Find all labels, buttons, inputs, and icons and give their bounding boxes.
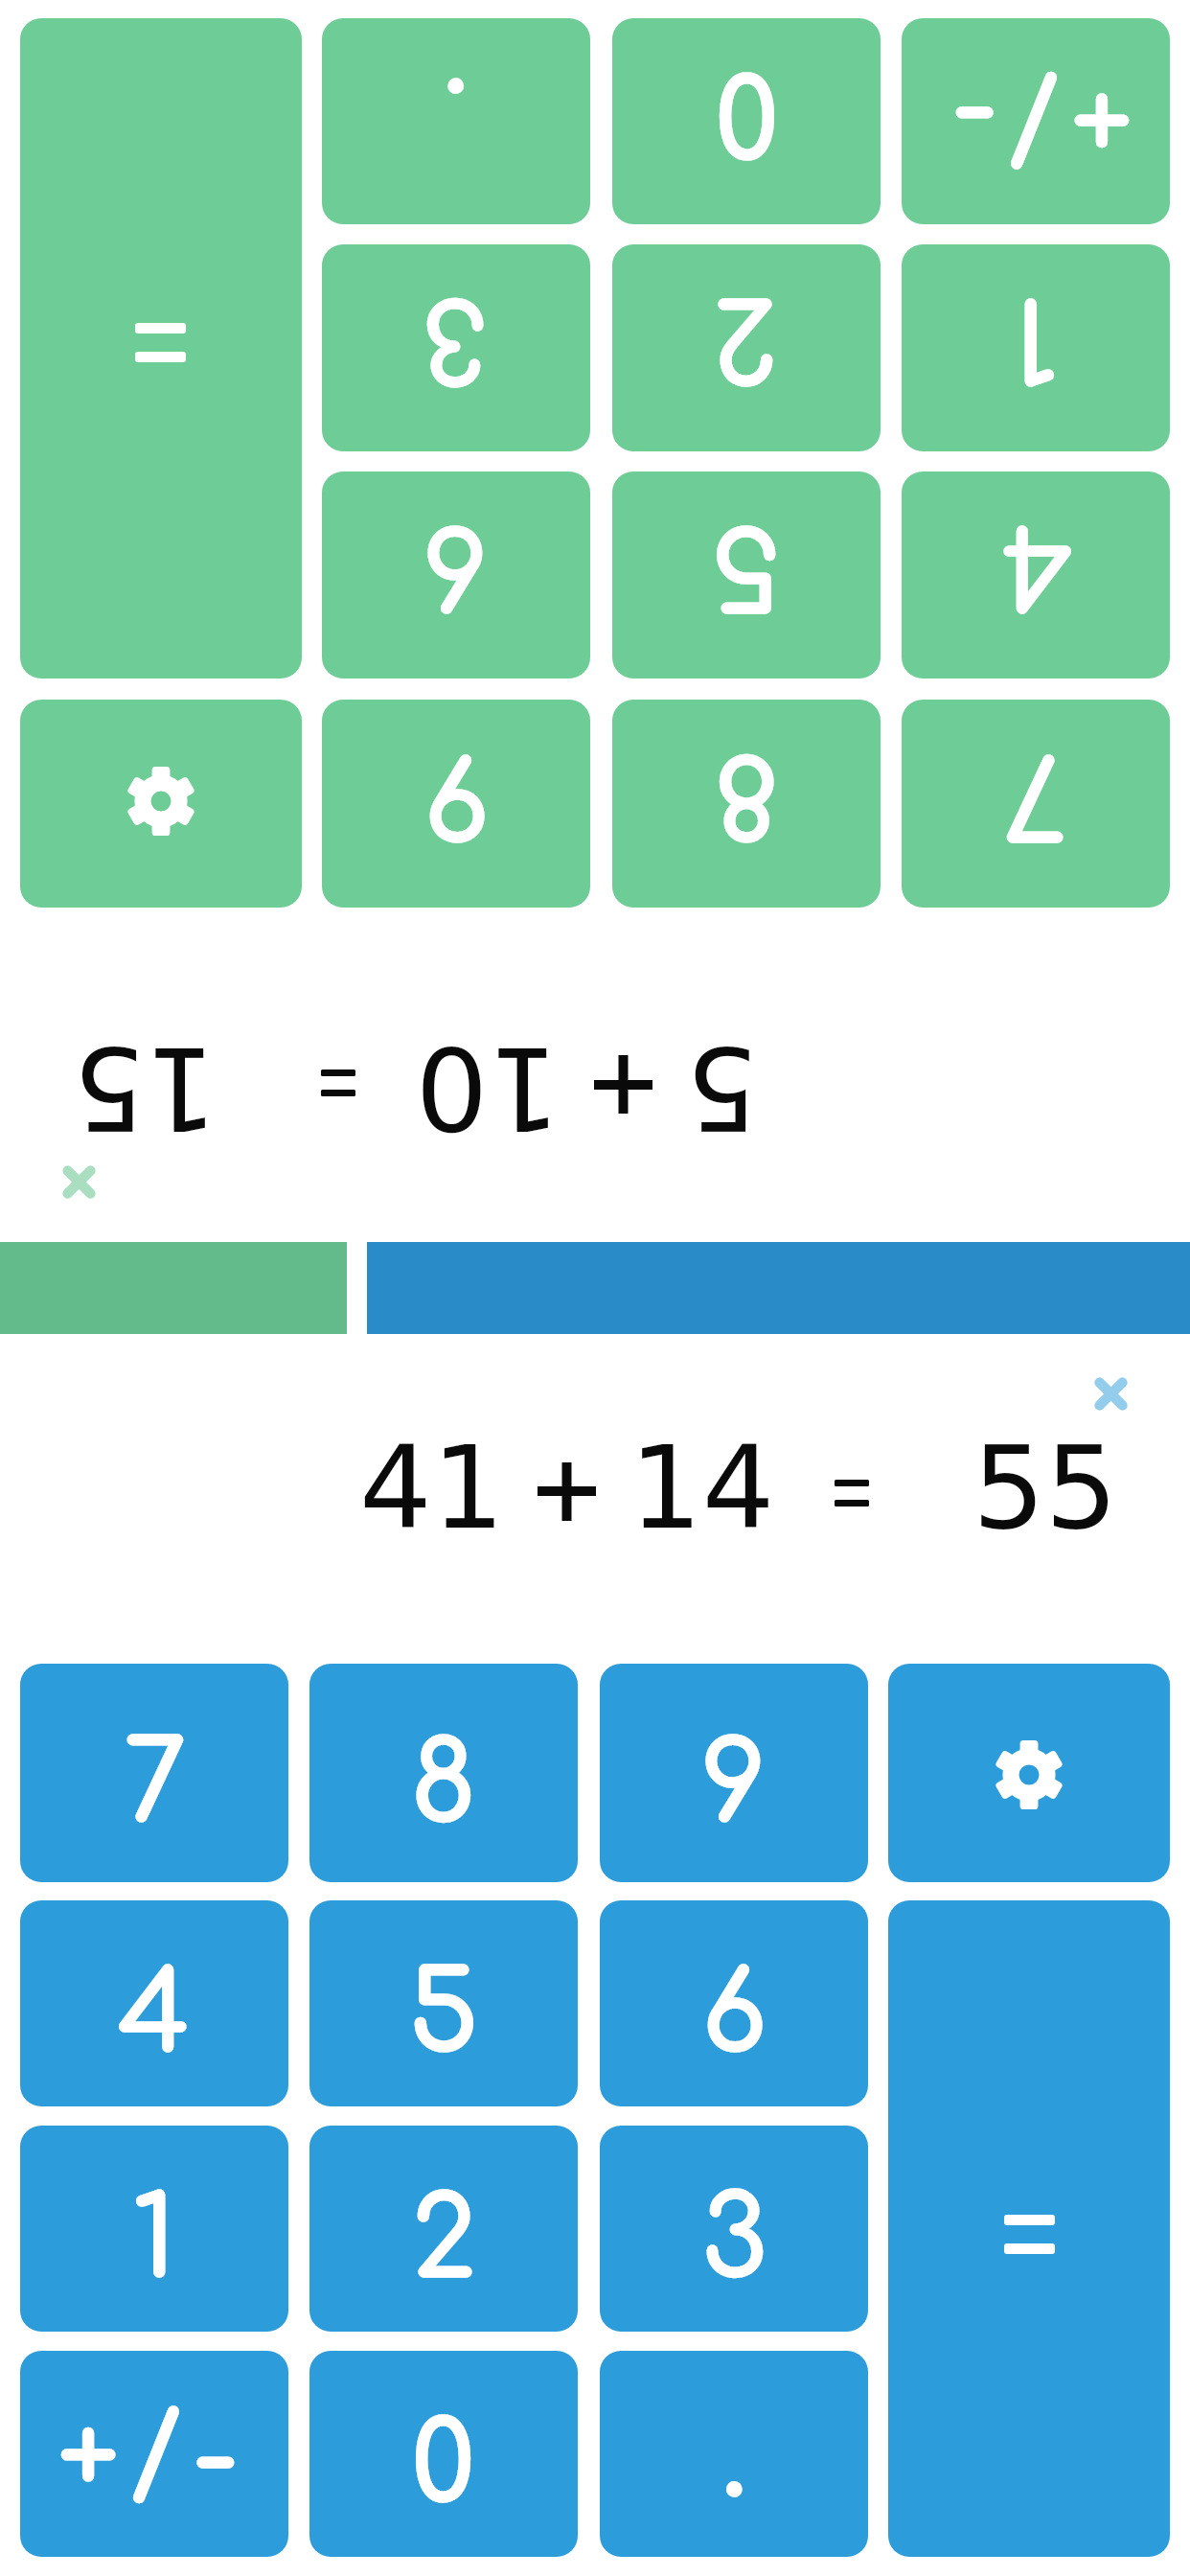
staticText: . <box>444 56 468 177</box>
staticText: 15 <box>72 1021 217 1154</box>
staticText: 1 <box>1015 274 1057 396</box>
staticText: 3 <box>423 274 488 396</box>
staticText: 6 <box>423 501 488 623</box>
staticText: . <box>444 56 468 177</box>
button[interactable]: . <box>600 2351 868 2557</box>
staticText: 4 <box>1000 501 1071 623</box>
staticText: +/- <box>58 2397 250 2518</box>
staticText: 5 <box>685 1021 758 1154</box>
button[interactable]: 7 <box>902 700 1170 908</box>
staticText: +/- <box>940 57 1132 178</box>
staticText: 1 <box>133 2180 175 2302</box>
staticText: 2 <box>412 2180 476 2302</box>
staticText: 7 <box>124 1725 186 1847</box>
button[interactable]: 5 <box>612 471 881 678</box>
staticText: 5 <box>409 1955 478 2077</box>
staticText: 9 <box>702 1725 767 1847</box>
staticText: 3 <box>423 274 488 396</box>
button[interactable]: 5 <box>309 1900 578 2106</box>
staticText: 9 <box>423 730 488 852</box>
staticText: 4 <box>119 1955 190 2077</box>
button[interactable]: Settings <box>20 700 302 908</box>
staticText: 5 <box>409 1955 478 2077</box>
staticText: 6 <box>702 1955 767 2077</box>
button[interactable]: Equals <box>20 18 302 678</box>
staticText: 4 <box>1000 501 1071 623</box>
staticText: 3 <box>702 2180 767 2302</box>
button[interactable]: Settings <box>888 1664 1170 1882</box>
staticText: . <box>722 2398 746 2519</box>
staticText: 7 <box>124 1725 186 1847</box>
staticText: 0 <box>715 48 778 170</box>
button[interactable]: 0 <box>612 18 881 224</box>
button[interactable]: 9 <box>600 1664 868 1882</box>
staticText: 14 <box>629 1422 775 1555</box>
staticText: 0 <box>412 2405 475 2527</box>
staticText: 8 <box>714 730 779 852</box>
staticText: +/- <box>58 2397 250 2518</box>
staticText: . <box>722 2398 746 2519</box>
button[interactable]: +/- <box>20 2351 288 2557</box>
button[interactable]: 0 <box>309 2351 578 2557</box>
button[interactable]: 9 <box>322 700 590 908</box>
staticText: 0 <box>715 48 778 170</box>
button[interactable]: 3 <box>322 244 590 451</box>
staticText: 4 <box>119 1955 190 2077</box>
staticText: 7 <box>1004 730 1066 852</box>
button[interactable]: 2 <box>612 244 881 451</box>
staticText: 5 <box>712 501 781 623</box>
staticText: 6 <box>423 501 488 623</box>
button[interactable]: 6 <box>600 1900 868 2106</box>
staticText: 2 <box>412 2180 476 2302</box>
button[interactable]: Clear entry <box>43 1146 115 1218</box>
button[interactable]: 8 <box>309 1664 578 1882</box>
staticText: 2 <box>714 274 778 396</box>
staticText: 8 <box>411 1725 476 1847</box>
button[interactable]: 8 <box>612 700 881 908</box>
button[interactable]: 2 <box>309 2126 578 2332</box>
button[interactable]: 7 <box>20 1664 288 1882</box>
button[interactable]: +/- <box>902 18 1170 224</box>
button[interactable]: 3 <box>600 2126 868 2332</box>
staticText: 0 <box>412 2405 475 2527</box>
staticText: 8 <box>714 730 779 852</box>
staticText: 55 <box>973 1422 1118 1555</box>
button[interactable]: 4 <box>20 1900 288 2106</box>
button[interactable]: 1 <box>902 244 1170 451</box>
staticText: 1 <box>133 2180 175 2302</box>
staticText: 7 <box>1004 730 1066 852</box>
staticText: 10 <box>415 1021 561 1154</box>
button[interactable]: Equals <box>888 1900 1170 2557</box>
staticText: 1 <box>1015 274 1057 396</box>
button[interactable]: . <box>322 18 590 224</box>
button[interactable]: 1 <box>20 2126 288 2332</box>
button[interactable]: 6 <box>322 471 590 678</box>
staticText: 3 <box>702 2180 767 2302</box>
staticText: 2 <box>714 274 778 396</box>
button[interactable]: Clear entry <box>1075 1358 1147 1430</box>
staticText: 9 <box>702 1725 767 1847</box>
staticText: 8 <box>411 1725 476 1847</box>
staticText: 5 <box>712 501 781 623</box>
staticText: 6 <box>702 1955 767 2077</box>
staticText: 9 <box>423 730 488 852</box>
button[interactable]: 4 <box>902 471 1170 678</box>
staticText: +/- <box>940 57 1132 178</box>
staticText: 41 <box>359 1422 505 1555</box>
